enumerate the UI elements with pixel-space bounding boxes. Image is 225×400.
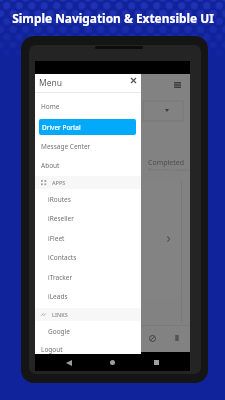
staticText: Completed [148, 158, 185, 168]
staticText: Driver Portal [42, 123, 81, 132]
button[interactable]: Logout [35, 340, 141, 359]
button[interactable]: Message Center [35, 137, 141, 156]
staticText: iRoutes [48, 195, 71, 204]
button[interactable]: Recent apps [145, 354, 167, 371]
staticText: iContacts [48, 253, 77, 262]
button[interactable]: iTracker [35, 268, 141, 287]
button[interactable]: iRoutes [35, 190, 141, 209]
staticText: APPS [52, 179, 66, 186]
button[interactable]: Home [101, 354, 123, 371]
button[interactable]: Back [58, 354, 80, 371]
button[interactable]: Cancel [142, 329, 162, 347]
staticText: iReseller [48, 214, 74, 223]
button[interactable] [38, 180, 181, 298]
staticText: Message Center [41, 142, 91, 151]
button[interactable]: Close menu [127, 74, 139, 86]
button[interactable]: iLeads [35, 287, 141, 306]
staticText: About [41, 161, 60, 170]
staticText: Menu [39, 77, 63, 89]
staticText: iFleet [48, 234, 65, 243]
button[interactable]: iContacts [35, 248, 141, 267]
button[interactable]: Google [35, 322, 141, 341]
staticText: LINKS [52, 311, 68, 318]
staticText: Logout [41, 345, 63, 354]
button[interactable]: iFleet [35, 229, 141, 248]
button[interactable]: Open navigation menu [170, 78, 184, 92]
button[interactable]: Home [35, 97, 141, 116]
staticText: iTracker [48, 273, 73, 282]
staticText: Google [48, 327, 70, 336]
button[interactable]: Pause [167, 329, 187, 347]
staticText: Home [41, 102, 60, 111]
staticText: Simple Navigation & Extensible UI [12, 10, 214, 26]
button[interactable]: Driver Portal [39, 119, 136, 135]
button[interactable]: About [35, 156, 141, 175]
button[interactable]: iReseller [35, 209, 141, 228]
staticText: iLeads [48, 292, 68, 301]
